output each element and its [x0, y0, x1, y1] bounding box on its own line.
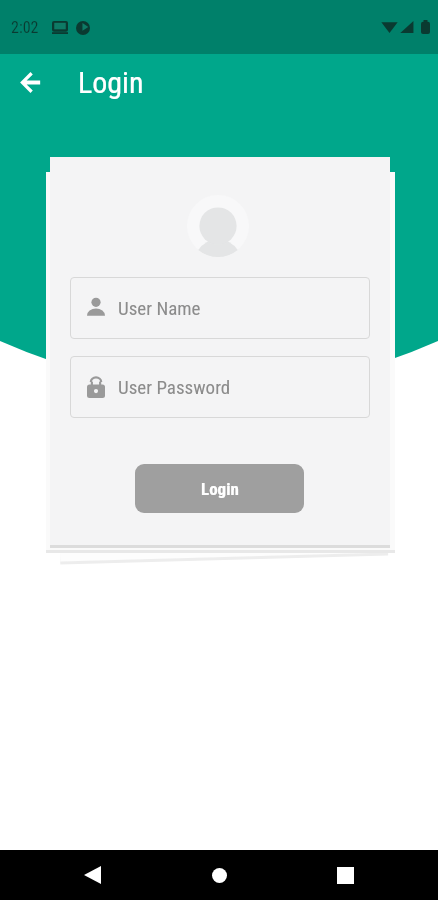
button[interactable]: User Password: [70, 356, 370, 418]
button[interactable]: User Name: [70, 277, 370, 339]
staticText: User Password: [118, 376, 231, 398]
button[interactable]: Back: [70, 853, 114, 897]
staticText: Login: [201, 479, 239, 499]
staticText: 2:02: [11, 18, 39, 37]
button[interactable]: Recents: [323, 853, 367, 897]
staticText: Login: [78, 65, 144, 100]
button[interactable]: Back: [6, 58, 54, 106]
button[interactable]: Home: [197, 853, 241, 897]
button[interactable]: Login: [135, 464, 304, 513]
staticText: User Name: [118, 297, 201, 319]
